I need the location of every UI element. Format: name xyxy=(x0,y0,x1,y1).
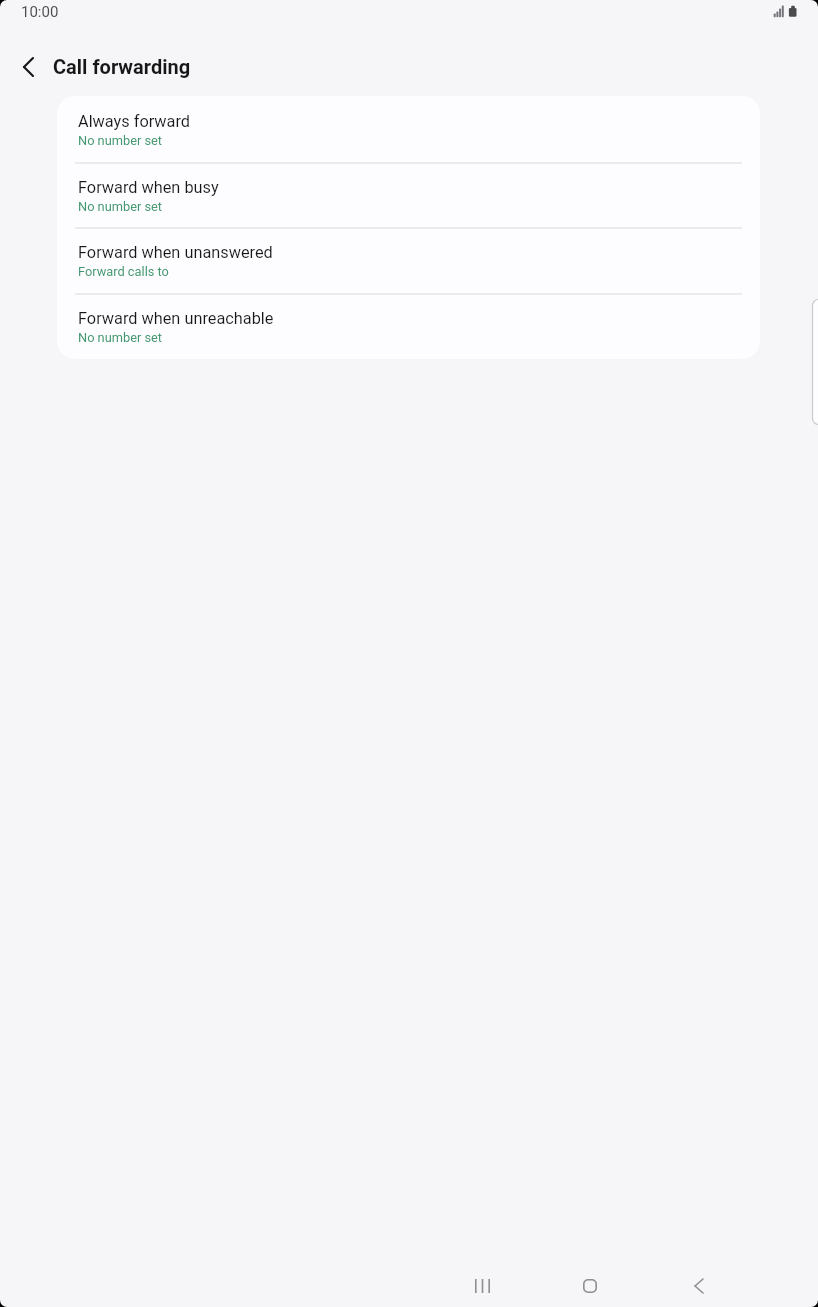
staticText: No number set xyxy=(78,133,163,148)
button[interactable]: Forward when unreachable xyxy=(57,293,760,359)
staticText: Call forwarding xyxy=(53,55,191,78)
button[interactable]: Back xyxy=(660,1263,738,1307)
staticText: Forward when unreachable xyxy=(78,309,274,328)
button[interactable]: Recent apps xyxy=(443,1263,521,1307)
button[interactable]: Always forward xyxy=(57,96,760,162)
staticText: No number set xyxy=(78,199,163,214)
staticText: Forward calls to xyxy=(78,264,169,279)
button[interactable]: Navigate up xyxy=(6,42,50,92)
staticText: Always forward xyxy=(78,112,191,131)
staticText: No number set xyxy=(78,330,163,345)
button[interactable]: Forward when busy xyxy=(57,162,760,228)
button[interactable]: Forward when unanswered xyxy=(57,227,760,293)
staticText: 10:00 xyxy=(21,3,59,21)
staticText: Forward when busy xyxy=(78,178,219,197)
staticText: Forward when unanswered xyxy=(78,243,273,262)
button[interactable]: Home xyxy=(551,1263,629,1307)
